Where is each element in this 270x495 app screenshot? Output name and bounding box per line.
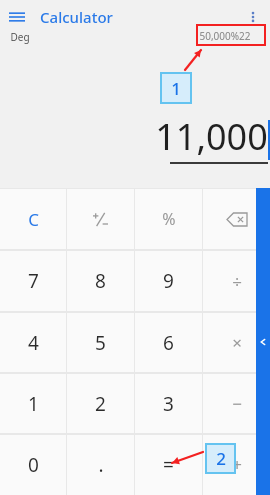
button[interactable]: Plus minus bbox=[67, 188, 134, 250]
other: Plus minus bbox=[67, 188, 134, 250]
staticText: Deg bbox=[10, 30, 30, 44]
staticText: 6 bbox=[163, 330, 174, 356]
staticText: Calculator bbox=[40, 7, 113, 27]
button[interactable]: 8 bbox=[67, 250, 134, 312]
button[interactable]: 7 bbox=[0, 250, 66, 312]
button[interactable]: 0 bbox=[0, 434, 66, 495]
button[interactable]: Open scientific panel bbox=[256, 188, 270, 495]
other: Backspace bbox=[203, 188, 270, 250]
button[interactable]: C bbox=[0, 188, 66, 250]
staticText: 4 bbox=[28, 330, 39, 356]
staticText: 3 bbox=[163, 391, 174, 417]
button[interactable]: . bbox=[67, 434, 134, 495]
button[interactable]: ÷ bbox=[203, 250, 270, 312]
button[interactable]: 5 bbox=[67, 312, 134, 373]
staticText: 0 bbox=[28, 452, 39, 478]
staticText: − bbox=[232, 392, 242, 415]
button[interactable]: Menu bbox=[0, 0, 34, 34]
staticText: 2 bbox=[95, 391, 106, 417]
staticText: 2 bbox=[216, 447, 226, 470]
staticText: . bbox=[98, 452, 104, 478]
button[interactable]: = bbox=[135, 434, 202, 495]
staticText: C bbox=[28, 208, 39, 231]
button[interactable]: 4 bbox=[0, 312, 66, 373]
staticText: 11,000 bbox=[155, 112, 268, 161]
staticText: 9 bbox=[163, 268, 174, 294]
button[interactable]: 6 bbox=[135, 312, 202, 373]
button[interactable]: % bbox=[135, 188, 202, 250]
button[interactable]: 9 bbox=[135, 250, 202, 312]
button[interactable]: 3 bbox=[135, 373, 202, 434]
staticText: 7 bbox=[28, 268, 39, 294]
staticText: 1 bbox=[28, 391, 39, 417]
button[interactable]: − bbox=[203, 373, 270, 434]
button[interactable]: More options bbox=[236, 0, 270, 34]
button[interactable]: × bbox=[203, 312, 270, 373]
staticText: ÷ bbox=[232, 270, 242, 293]
button[interactable]: 2 bbox=[67, 373, 134, 434]
button[interactable]: Backspace bbox=[203, 188, 270, 250]
staticText: = bbox=[163, 452, 174, 478]
staticText: + bbox=[232, 453, 242, 476]
staticText: × bbox=[232, 331, 242, 354]
staticText: % bbox=[162, 208, 176, 230]
staticText: 50,000%22 bbox=[199, 29, 251, 43]
button[interactable]: + bbox=[203, 434, 270, 495]
staticText: 5 bbox=[95, 330, 106, 356]
staticText: 1 bbox=[171, 77, 181, 100]
button[interactable]: 1 bbox=[0, 373, 66, 434]
staticText: 8 bbox=[95, 268, 106, 294]
